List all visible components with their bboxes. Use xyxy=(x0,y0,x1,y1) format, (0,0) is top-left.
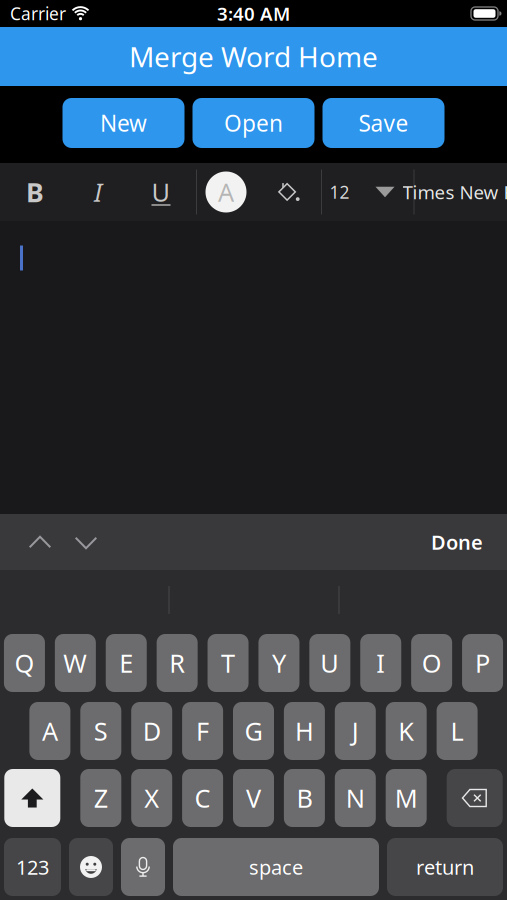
button[interactable] xyxy=(22,522,58,562)
staticText: space xyxy=(249,854,303,880)
staticText: Save xyxy=(358,108,408,138)
staticText: New xyxy=(100,108,147,138)
button[interactable]: return xyxy=(387,838,503,896)
staticText: U xyxy=(151,175,170,209)
staticText: Merge Word Home xyxy=(129,38,378,75)
staticText: A xyxy=(218,175,234,209)
staticText: Q xyxy=(14,646,34,680)
button[interactable]: L xyxy=(437,702,478,760)
button[interactable]: D xyxy=(131,702,172,760)
button[interactable]: B xyxy=(284,769,325,827)
button[interactable]: O xyxy=(411,634,452,692)
button[interactable] xyxy=(271,170,307,214)
button[interactable]: Times New Rom xyxy=(402,170,507,214)
button[interactable]: I xyxy=(78,170,118,214)
button[interactable]: M xyxy=(386,769,427,827)
staticText: Carrier xyxy=(10,2,66,25)
button[interactable]: U xyxy=(141,170,181,214)
button[interactable]: R xyxy=(157,634,198,692)
staticText: 12 xyxy=(329,180,349,203)
staticText: X xyxy=(144,781,159,815)
button[interactable]: E xyxy=(106,634,147,692)
button[interactable]: J xyxy=(335,702,376,760)
staticText: 3:40 AM xyxy=(217,1,290,26)
staticText: I xyxy=(94,175,102,209)
staticText: A xyxy=(42,714,58,748)
button[interactable]: Done xyxy=(431,520,483,564)
button[interactable]: 12 xyxy=(329,170,394,214)
staticText: N xyxy=(346,781,365,815)
button[interactable]: X xyxy=(131,769,172,827)
staticText: Open xyxy=(224,108,283,138)
staticText: L xyxy=(451,714,464,748)
button[interactable] xyxy=(69,838,113,896)
staticText: F xyxy=(196,714,209,748)
staticText: M xyxy=(395,781,418,815)
button[interactable] xyxy=(68,523,104,563)
button[interactable]: T xyxy=(207,634,248,692)
staticText: Times New Rom xyxy=(402,180,507,204)
staticText: O xyxy=(422,646,442,680)
staticText: Y xyxy=(272,646,286,680)
button[interactable]: W xyxy=(55,634,96,692)
staticText: G xyxy=(244,714,262,748)
staticText: U xyxy=(320,646,339,680)
button[interactable]: S xyxy=(80,702,121,760)
staticText: C xyxy=(195,781,211,815)
staticText: 123 xyxy=(16,854,49,880)
button[interactable]: New xyxy=(62,98,184,148)
staticText: R xyxy=(169,646,185,680)
button[interactable]: K xyxy=(386,702,427,760)
button[interactable]: A xyxy=(204,170,248,214)
button[interactable]: B xyxy=(15,170,55,214)
staticText: B xyxy=(296,781,312,815)
staticText: H xyxy=(295,714,314,748)
button[interactable]: space xyxy=(173,838,379,896)
staticText: K xyxy=(398,714,414,748)
button[interactable]: Z xyxy=(80,769,121,827)
staticText: Z xyxy=(94,781,108,815)
button[interactable] xyxy=(447,769,503,827)
staticText: T xyxy=(221,646,235,680)
button[interactable]: N xyxy=(335,769,376,827)
button[interactable]: I xyxy=(360,634,401,692)
button[interactable]: F xyxy=(182,702,223,760)
button[interactable]: 123 xyxy=(4,838,61,896)
staticText: E xyxy=(119,646,133,680)
button[interactable]: Open xyxy=(192,98,314,148)
button[interactable]: Save xyxy=(322,98,444,148)
button[interactable]: A xyxy=(29,702,70,760)
staticText: J xyxy=(352,714,359,748)
button[interactable]: C xyxy=(182,769,223,827)
staticText: I xyxy=(376,646,385,680)
button[interactable]: H xyxy=(284,702,325,760)
button[interactable] xyxy=(4,769,60,827)
staticText: S xyxy=(94,714,108,748)
staticText: W xyxy=(63,646,87,680)
button[interactable]: V xyxy=(233,769,274,827)
button[interactable]: Y xyxy=(258,634,299,692)
staticText: B xyxy=(26,174,44,210)
button[interactable]: G xyxy=(233,702,274,760)
staticText: Done xyxy=(431,529,483,555)
staticText: D xyxy=(143,714,161,748)
button[interactable]: U xyxy=(309,634,350,692)
staticText: return xyxy=(416,854,474,880)
button[interactable]: Q xyxy=(4,634,45,692)
staticText: P xyxy=(475,646,490,680)
staticText: V xyxy=(246,781,261,815)
button[interactable]: P xyxy=(462,634,503,692)
button[interactable] xyxy=(121,838,165,896)
